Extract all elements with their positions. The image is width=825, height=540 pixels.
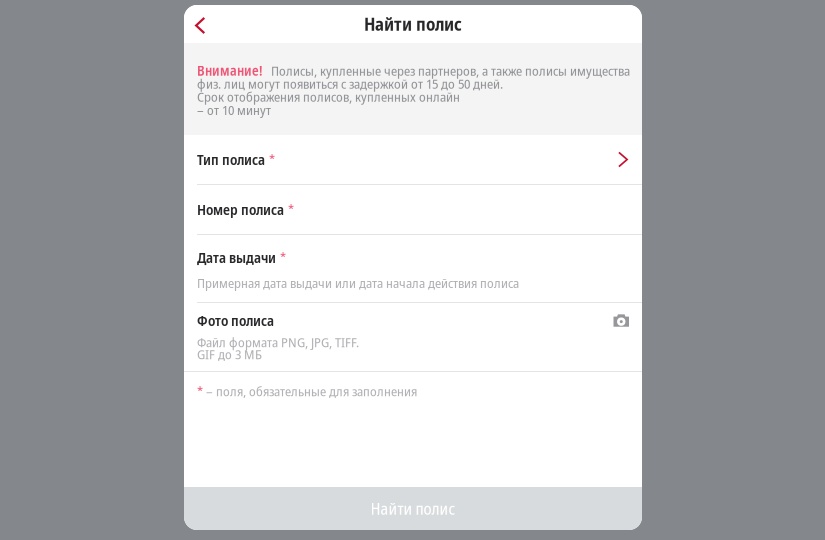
staticText: Номер полиса [197, 200, 284, 219]
button[interactable]: Тип полиса [184, 135, 642, 184]
staticText: Найти полис [370, 498, 455, 519]
staticText: * [280, 248, 286, 266]
button[interactable]: Найти полис [184, 487, 642, 530]
staticText: Дата выдачи [197, 248, 276, 267]
button[interactable]: Номер полиса [184, 185, 642, 234]
button[interactable]: Назад [184, 5, 226, 43]
staticText: * [269, 150, 275, 168]
staticText: Внимание! Полисы, купленные через партне… [197, 64, 630, 116]
staticText: Найти полис [364, 12, 462, 36]
staticText: Фото полиса [197, 311, 274, 330]
staticText: Файл формата PNG, JPG, TIFF. GIF до 3 МБ [197, 336, 359, 360]
staticText: * [197, 382, 203, 400]
button[interactable]: Дата выдачи [184, 235, 642, 302]
staticText: – поля, обязательные для заполнения [206, 382, 417, 400]
staticText: Тип полиса [197, 150, 265, 169]
staticText: * [288, 200, 294, 218]
button[interactable]: Фото полиса [184, 303, 642, 371]
staticText: Примерная дата выдачи или дата начала де… [197, 274, 519, 292]
